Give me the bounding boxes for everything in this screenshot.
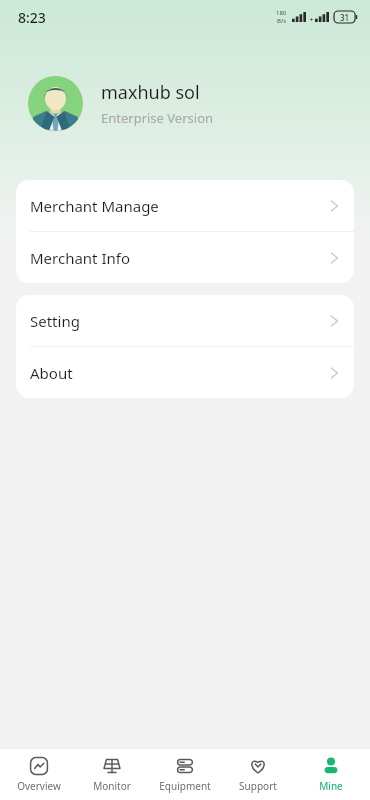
- button[interactable]: Mine: [297, 756, 365, 793]
- staticText: Enterprise Version: [101, 109, 214, 127]
- button[interactable]: Setting: [16, 295, 354, 346]
- staticText: Mine: [319, 779, 343, 793]
- staticText: About: [30, 363, 73, 383]
- button[interactable]: About: [16, 347, 354, 398]
- staticText: maxhub sol: [101, 80, 200, 105]
- staticText: B/s: [277, 17, 287, 25]
- staticText: Setting: [30, 311, 80, 331]
- button[interactable]: maxhub sol: [0, 76, 370, 131]
- button[interactable]: Equipment: [151, 756, 219, 793]
- button[interactable]: Monitor: [78, 756, 146, 793]
- staticText: 31: [340, 12, 350, 23]
- button[interactable]: Merchant Manage: [16, 180, 354, 231]
- staticText: 8:23: [18, 8, 46, 27]
- staticText: 180: [276, 9, 287, 17]
- button[interactable]: Overview: [5, 756, 73, 793]
- staticText: Merchant Info: [30, 248, 131, 268]
- staticText: Equipment: [159, 779, 211, 793]
- button[interactable]: Merchant Info: [16, 232, 354, 283]
- staticText: Merchant Manage: [30, 196, 159, 216]
- staticText: Monitor: [93, 779, 131, 793]
- staticText: Support: [239, 779, 277, 793]
- button[interactable]: Support: [224, 756, 292, 793]
- staticText: Overview: [17, 779, 61, 793]
